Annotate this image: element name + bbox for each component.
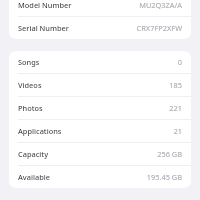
button[interactable]: Videos	[9, 74, 191, 96]
staticText: 0	[177, 57, 182, 67]
staticText: Songs	[18, 57, 40, 67]
staticText: Model Number	[18, 0, 72, 10]
staticText: MU2Q3ZA/A	[139, 0, 182, 10]
staticText: Available	[18, 172, 51, 182]
staticText: Photos	[18, 103, 43, 113]
staticText: 256 GB	[157, 149, 182, 159]
button[interactable]: Applications	[9, 120, 191, 142]
button[interactable]: Available	[9, 166, 191, 188]
button[interactable]: Model Number	[9, 0, 191, 16]
button[interactable]: Songs	[9, 51, 191, 73]
button[interactable]: Photos	[9, 97, 191, 119]
staticText: 185	[169, 80, 182, 90]
staticText: Applications	[18, 126, 62, 136]
staticText: Videos	[18, 80, 42, 90]
staticText: 221	[169, 103, 182, 113]
staticText: 21	[173, 126, 182, 136]
staticText: Serial Number	[18, 23, 69, 33]
staticText: Capacity	[18, 149, 49, 159]
staticText: CRX7FP2XFW	[136, 23, 182, 33]
button[interactable]: Serial Number	[9, 17, 191, 39]
staticText: 195.45 GB	[146, 172, 182, 182]
button[interactable]: Capacity	[9, 143, 191, 165]
